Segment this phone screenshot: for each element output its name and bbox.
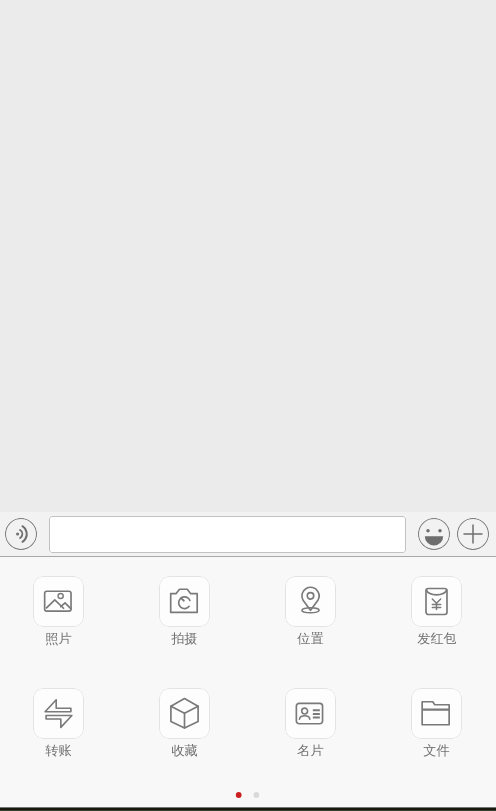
button[interactable]: Emoji	[418, 518, 450, 550]
staticText: 发红包	[417, 630, 457, 647]
staticText: 转账	[45, 742, 72, 759]
staticText: 拍摄	[171, 630, 198, 647]
button[interactable]: 照片	[13, 576, 104, 647]
button[interactable]: 发红包	[391, 576, 482, 647]
button[interactable]: 名片	[265, 688, 356, 759]
button[interactable]: 文件	[391, 688, 482, 759]
staticText: 名片	[297, 742, 324, 759]
button[interactable]: 收藏	[139, 688, 230, 759]
staticText: 文件	[423, 742, 450, 759]
button[interactable]: More functions	[457, 518, 489, 550]
button[interactable]: Message input	[49, 516, 406, 553]
button[interactable]: 拍摄	[139, 576, 230, 647]
button[interactable]: 位置	[265, 576, 356, 647]
button[interactable]: 转账	[13, 688, 104, 759]
button[interactable]: Voice message	[5, 518, 37, 550]
staticText: 位置	[297, 630, 324, 647]
staticText: 照片	[45, 630, 72, 647]
staticText: 收藏	[171, 742, 198, 759]
